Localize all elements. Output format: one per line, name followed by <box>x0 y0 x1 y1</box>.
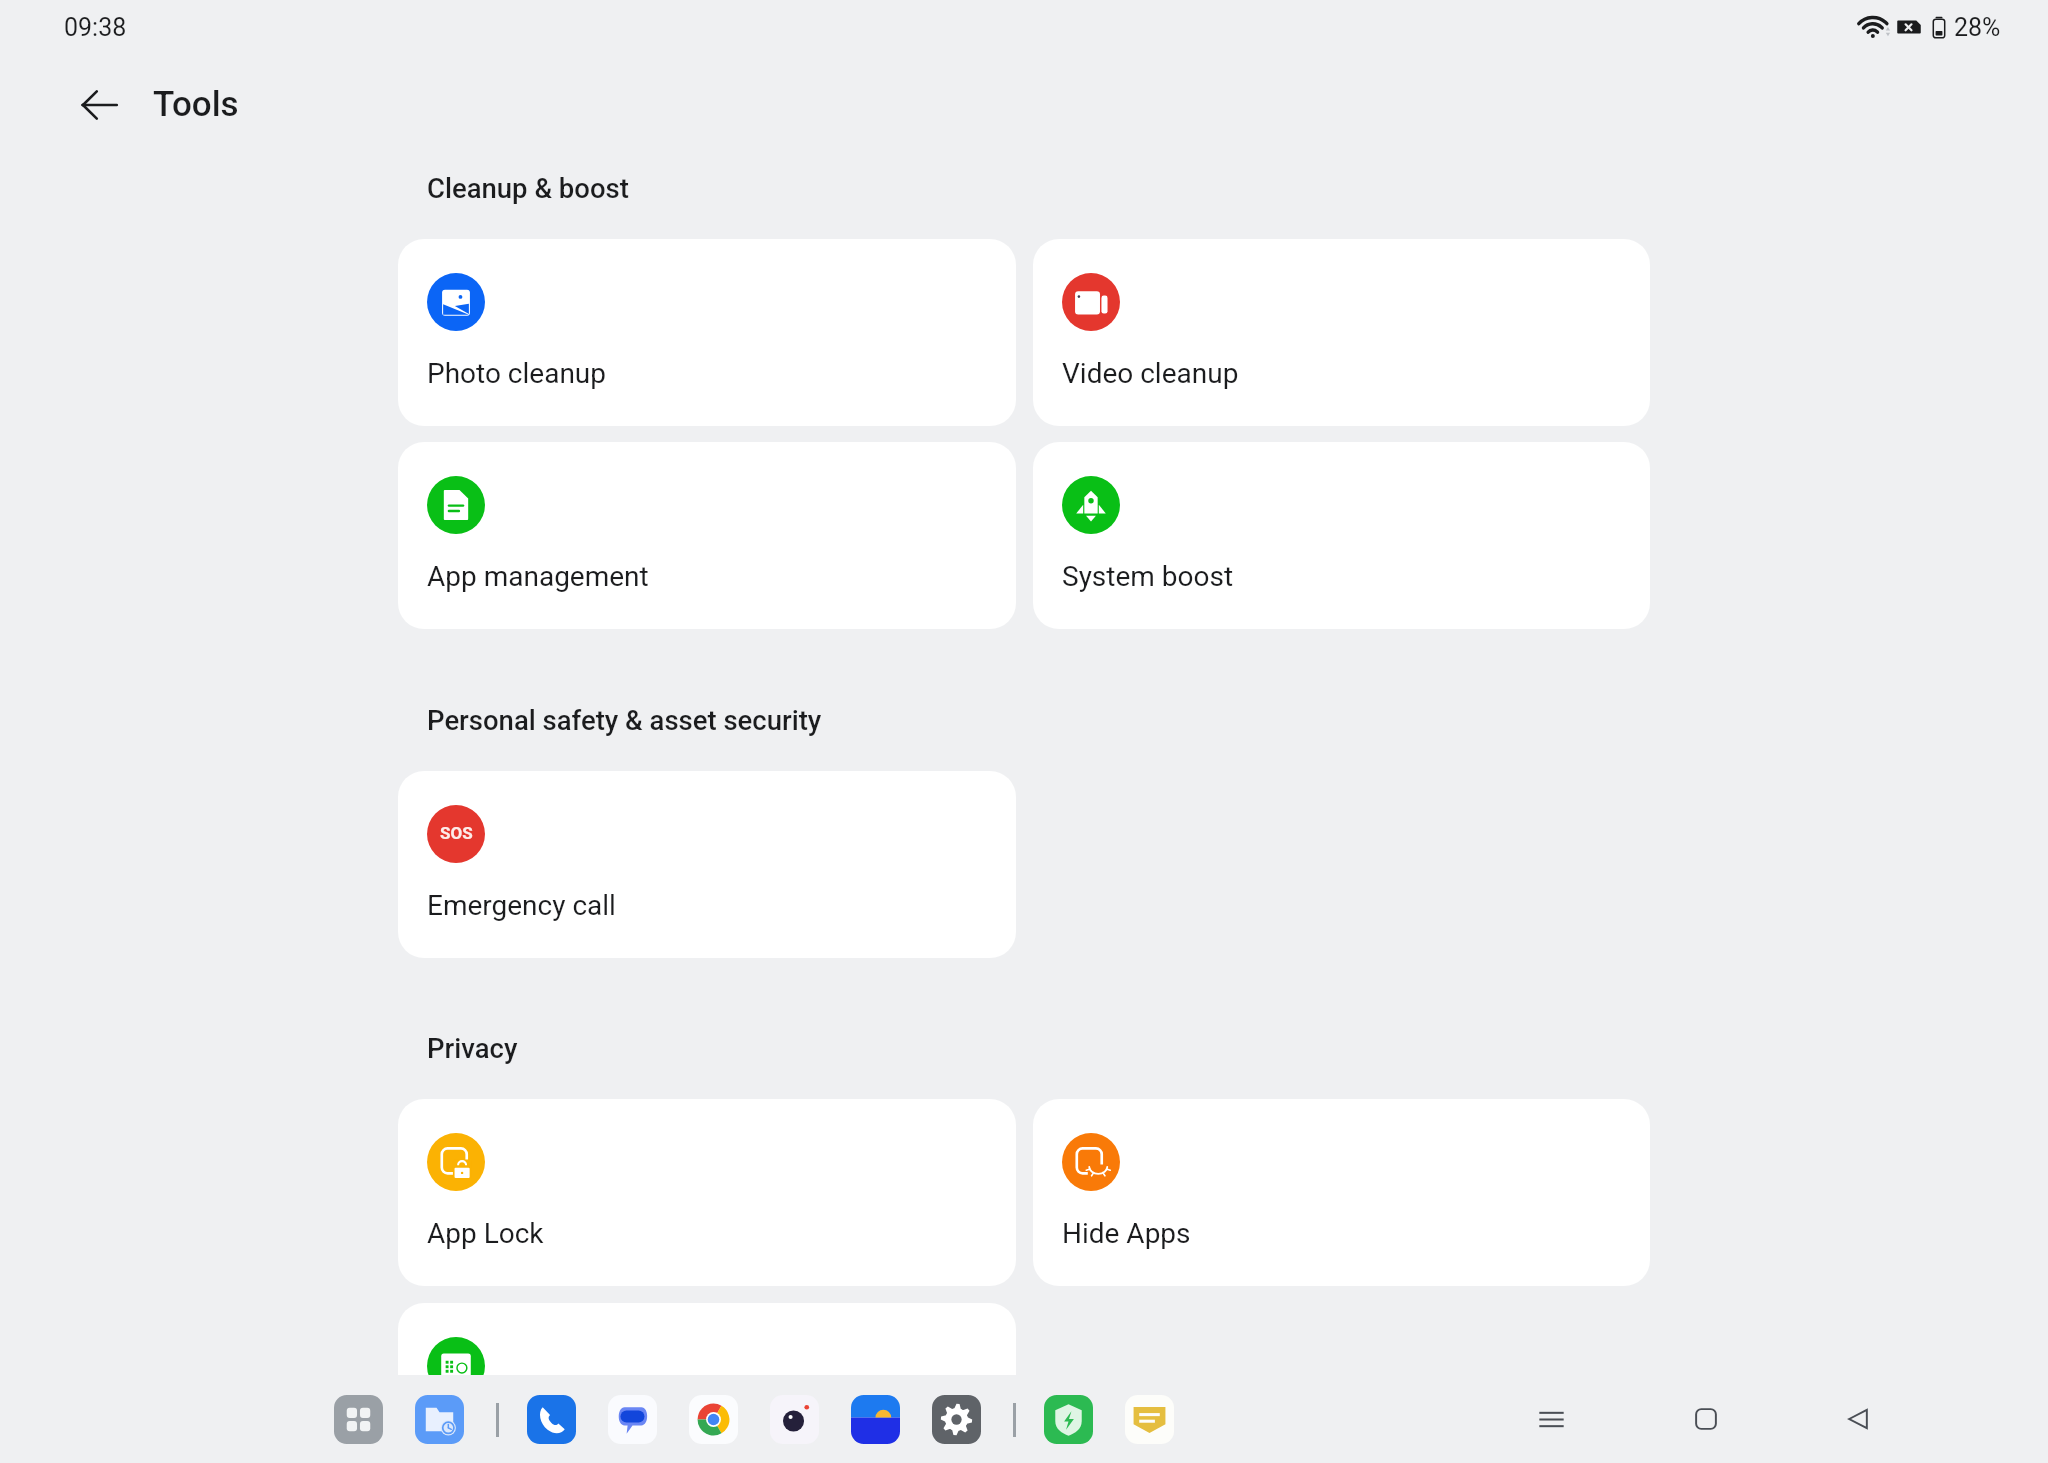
staticText: Hide Apps <box>1062 1217 1191 1250</box>
button[interactable]: Home <box>1670 1383 1742 1455</box>
button[interactable]: Notes <box>1125 1395 1174 1444</box>
staticText: Emergency call <box>427 889 616 922</box>
staticText: Privacy <box>427 1032 518 1064</box>
button[interactable]: App management <box>398 442 1016 629</box>
button[interactable]: Security <box>1044 1395 1093 1444</box>
button[interactable]: SOS <box>398 771 1016 958</box>
button[interactable]: Private safe <box>398 1303 1016 1463</box>
staticText: 28% <box>1954 13 2001 42</box>
button[interactable]: Settings <box>932 1395 981 1444</box>
staticText: App management <box>427 560 649 593</box>
button[interactable]: All apps <box>334 1395 383 1444</box>
button[interactable]: Photo cleanup <box>398 239 1016 426</box>
button[interactable]: Chrome <box>689 1395 738 1444</box>
staticText: 09:38 <box>64 13 127 42</box>
button[interactable]: App Lock <box>398 1099 1016 1286</box>
button[interactable]: Messages <box>608 1395 657 1444</box>
button[interactable]: Hide Apps <box>1033 1099 1650 1286</box>
staticText: Personal safety & asset security <box>427 704 822 736</box>
staticText: Video cleanup <box>1062 357 1239 390</box>
button[interactable]: Camera <box>770 1395 819 1444</box>
button[interactable]: Video cleanup <box>1033 239 1650 426</box>
staticText: Private safe <box>427 1421 575 1454</box>
button[interactable]: Files <box>415 1395 464 1444</box>
button[interactable]: System boost <box>1033 442 1650 629</box>
button[interactable]: Back <box>64 69 136 141</box>
button[interactable]: Phone <box>527 1395 576 1444</box>
button[interactable]: Recent apps <box>1515 1383 1587 1455</box>
staticText: System boost <box>1062 560 1234 593</box>
staticText: App Lock <box>427 1217 544 1250</box>
button[interactable]: Photos <box>851 1395 900 1444</box>
button[interactable]: Back <box>1822 1383 1894 1455</box>
staticText: Tools <box>153 84 239 125</box>
staticText: Photo cleanup <box>427 357 607 390</box>
staticText: SOS <box>440 823 473 843</box>
staticText: Cleanup & boost <box>427 172 629 204</box>
